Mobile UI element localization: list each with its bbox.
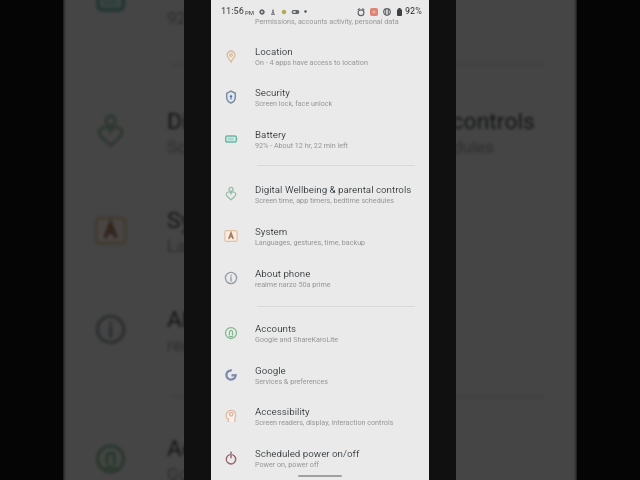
staticText: 92% (405, 6, 422, 17)
button[interactable]: Digital Wellbeing & parental controls (211, 174, 429, 216)
staticText: 92% - About 12 hr, 22 min left (167, 7, 386, 26)
staticText: About phone (167, 306, 299, 332)
staticText: PM (245, 9, 255, 16)
staticText: Screen time, app timers, bedtime schedul… (255, 196, 394, 204)
button[interactable]: About phone (211, 258, 429, 300)
staticText: realme narzo 50a prime (167, 334, 346, 353)
staticText: Screen time, app timers, bedtime schedul… (167, 136, 494, 155)
staticText: Digital Wellbeing & parental controls (167, 108, 536, 134)
staticText: 11:56 (221, 6, 244, 17)
button[interactable]: Accessibility (211, 396, 429, 438)
staticText: Google (255, 365, 286, 376)
staticText: Services & preferences (255, 377, 329, 385)
staticText: Permissions, accounts activity, personal… (255, 17, 399, 25)
staticText: Power on, power off (255, 460, 319, 468)
staticText: Accessibility (255, 406, 310, 417)
staticText: About phone (255, 268, 311, 279)
staticText: Digital Wellbeing & parental controls (255, 184, 412, 195)
staticText: Languages, gestures, time, backup (255, 238, 366, 246)
staticText: System (167, 207, 245, 233)
staticText: System (255, 226, 288, 237)
staticText: On - 4 apps have access to location (255, 58, 368, 66)
button[interactable]: Accounts (211, 313, 429, 355)
staticText: Location (255, 46, 293, 57)
staticText: Accounts (167, 435, 266, 461)
button[interactable]: System (211, 216, 429, 258)
staticText: Google and ShareKaroLite (167, 463, 365, 480)
staticText: Security (255, 87, 290, 98)
button[interactable]: Scheduled power on/off (211, 438, 429, 480)
staticText: Accounts (255, 323, 297, 334)
button[interactable]: Battery (211, 119, 429, 161)
staticText: Languages, gestures, time, backup (167, 235, 428, 254)
button[interactable]: Location (211, 36, 429, 78)
staticText: Screen lock, face unlock (255, 99, 333, 107)
button[interactable]: Google (211, 355, 429, 397)
staticText: Screen readers, display, interaction con… (255, 418, 394, 426)
staticText: Battery (167, 0, 240, 5)
staticText: realme narzo 50a prime (255, 280, 331, 288)
staticText: 92% - About 12 hr, 22 min left (255, 141, 348, 149)
staticText: Google and ShareKaroLite (255, 335, 339, 343)
button[interactable]: Security (211, 77, 429, 119)
staticText: Battery (255, 129, 286, 140)
staticText: Scheduled power on/off (255, 448, 360, 459)
